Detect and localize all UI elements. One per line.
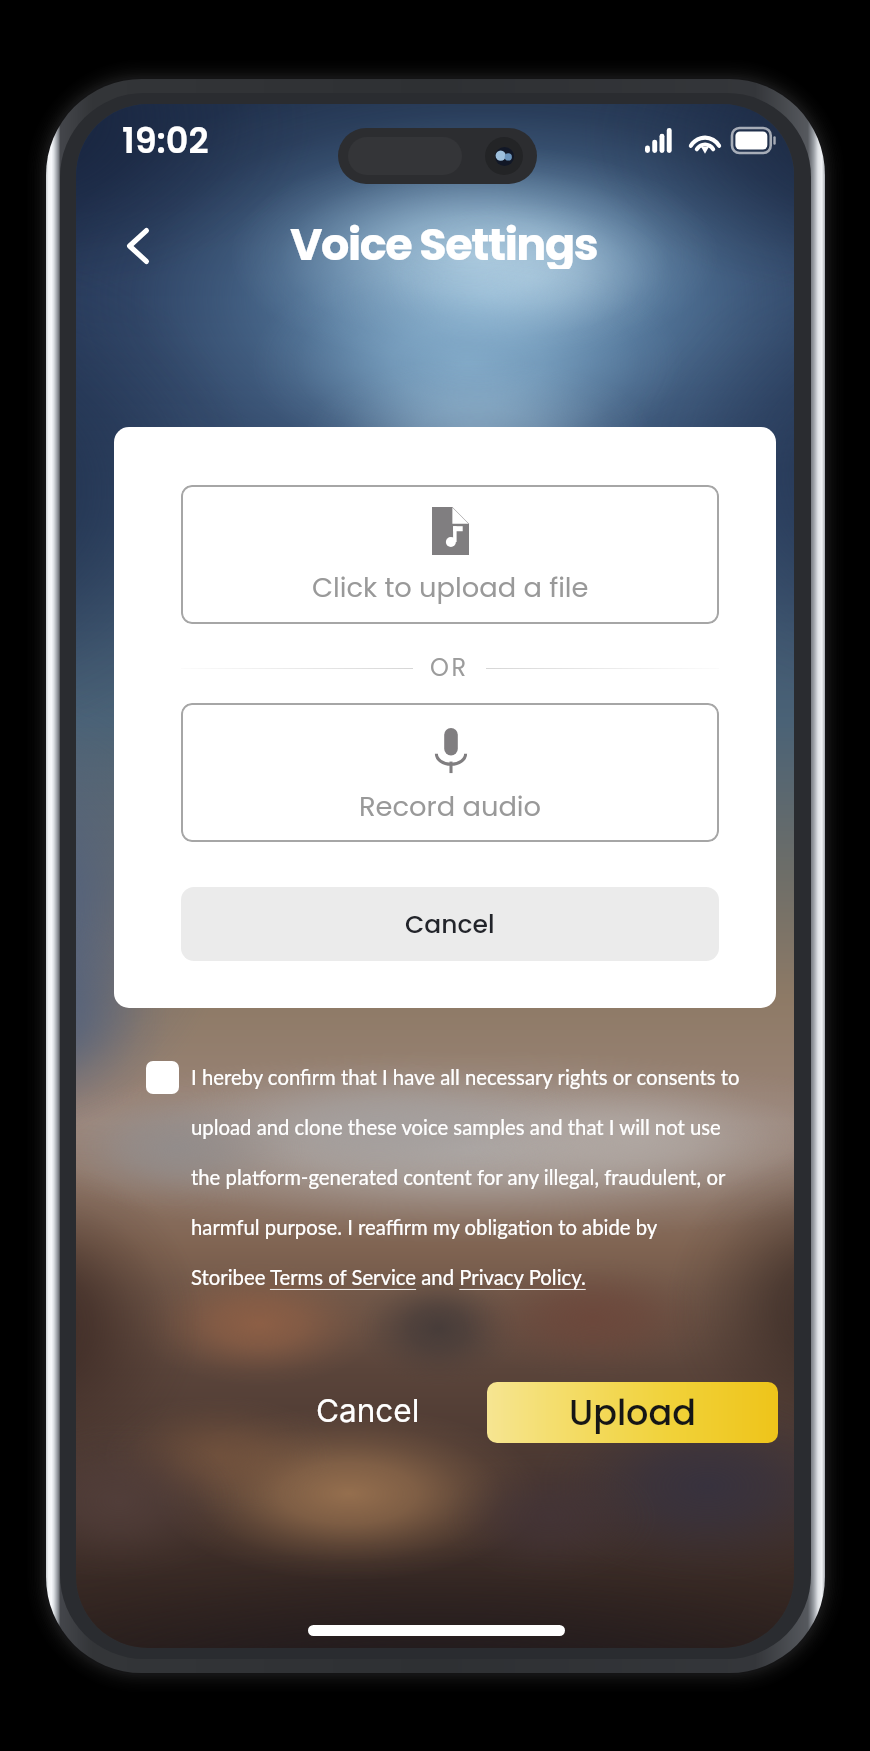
button[interactable]: Record audio — [181, 703, 719, 842]
button[interactable]: I agree checkbox — [146, 1061, 179, 1094]
button[interactable]: Click to upload a file — [181, 485, 719, 624]
staticText: Record audio — [359, 787, 542, 825]
staticText: Voice Settings — [290, 213, 598, 269]
button[interactable]: Back — [107, 215, 169, 277]
button[interactable]: Cancel — [181, 887, 719, 961]
staticText: Cancel — [405, 907, 495, 942]
staticText: 19:02 — [122, 116, 209, 165]
button[interactable]: Upload — [487, 1382, 778, 1443]
staticText: I hereby confirm that I have all necessa… — [191, 1065, 740, 1289]
staticText: Cancel — [316, 1391, 420, 1429]
staticText: Click to upload a file — [312, 568, 589, 606]
staticText: OR — [430, 651, 469, 685]
button[interactable]: Cancel — [293, 1379, 443, 1440]
staticText: Upload — [569, 1388, 696, 1437]
